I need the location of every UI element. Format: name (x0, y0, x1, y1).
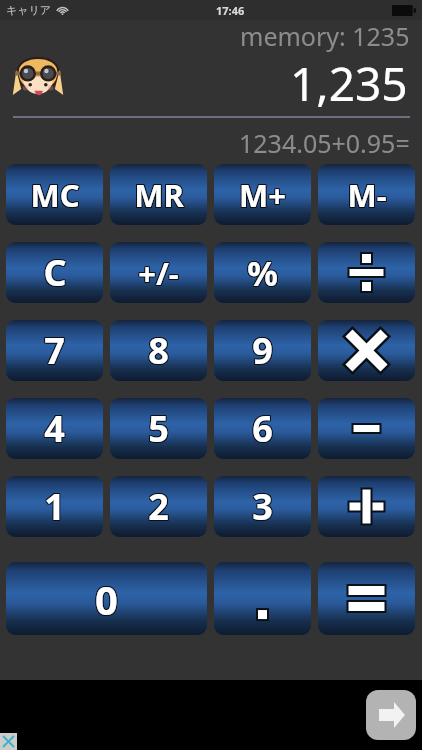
staticText: 1 (43, 483, 64, 532)
staticText: M+ (240, 174, 287, 216)
button[interactable]: 1 (6, 476, 103, 537)
staticText: 6 (253, 404, 274, 453)
staticText: M- (346, 173, 386, 215)
button[interactable]: Decimal point (214, 562, 311, 635)
staticText: MR (133, 173, 183, 215)
staticText: M- (348, 173, 388, 215)
staticText: 6 (252, 405, 273, 454)
staticText: +/- (139, 252, 180, 294)
staticText: 4 (44, 405, 65, 454)
staticText: 9 (253, 326, 274, 375)
button[interactable]: 8 (110, 320, 207, 381)
staticText: M+ (238, 173, 285, 215)
staticText: C (44, 247, 68, 296)
staticText: % (247, 249, 278, 295)
staticText: 0 (95, 571, 118, 625)
button[interactable]: Open ad (366, 690, 416, 740)
button[interactable]: Close ad (0, 733, 17, 750)
staticText: % (248, 250, 279, 296)
staticText: 1 (44, 483, 65, 532)
staticText: C (43, 249, 67, 298)
staticText: 5 (149, 405, 170, 454)
staticText: 4 (43, 403, 64, 452)
staticText: 9 (252, 327, 273, 376)
staticText: 9 (253, 325, 274, 374)
staticText: MR (135, 174, 185, 216)
staticText: 3 (252, 483, 273, 532)
staticText: MR (134, 173, 184, 215)
staticText: % (246, 251, 277, 297)
staticText: % (248, 251, 279, 297)
button[interactable]: Plus (318, 476, 415, 537)
button[interactable]: % (214, 242, 311, 303)
staticText: 8 (147, 327, 168, 376)
staticText: 5 (147, 403, 168, 452)
staticText: 2 (147, 482, 168, 531)
staticText: 0 (94, 571, 117, 625)
staticText: 5 (147, 405, 168, 454)
staticText: M- (348, 175, 388, 217)
staticText: +/- (137, 253, 178, 295)
staticText: 5 (149, 404, 170, 453)
staticText: 9 (251, 326, 272, 375)
staticText: M- (348, 174, 388, 216)
staticText: MR (134, 175, 184, 217)
staticText: MC (30, 175, 80, 217)
staticText: MC (30, 173, 80, 215)
staticText: M+ (238, 174, 285, 216)
staticText: MC (31, 175, 81, 217)
button[interactable]: 0 (6, 562, 207, 635)
staticText: 3 (253, 482, 274, 531)
button[interactable]: C (6, 242, 103, 303)
button[interactable]: MR (110, 164, 207, 225)
staticText: % (246, 250, 277, 296)
button[interactable]: +/- (110, 242, 207, 303)
button[interactable]: 9 (214, 320, 311, 381)
staticText: 8 (149, 327, 170, 376)
staticText: 8 (147, 325, 168, 374)
button[interactable]: Minus (318, 398, 415, 459)
staticText: 4 (45, 404, 66, 453)
staticText: C (44, 248, 68, 297)
button[interactable]: M- (318, 164, 415, 225)
button[interactable]: Equals (318, 562, 415, 635)
staticText: 6 (252, 403, 273, 452)
staticText: 6 (253, 405, 274, 454)
staticText: 3 (251, 482, 272, 531)
staticText: M+ (239, 175, 286, 217)
staticText: 1 (44, 481, 65, 530)
button[interactable]: M+ (214, 164, 311, 225)
staticText: 2 (148, 482, 169, 531)
staticText: 2 (149, 481, 170, 530)
staticText: MC (29, 174, 79, 216)
button[interactable]: MC (6, 164, 103, 225)
button[interactable]: 4 (6, 398, 103, 459)
staticText: MR (133, 174, 183, 216)
staticText: memory: 1235 (240, 19, 410, 53)
staticText: 7 (45, 326, 66, 375)
staticText: MC (31, 174, 81, 216)
button[interactable]: Advertisement (0, 680, 422, 750)
staticText: MC (29, 175, 79, 217)
button[interactable]: 7 (6, 320, 103, 381)
staticText: 0 (94, 573, 117, 627)
staticText: 7 (43, 325, 64, 374)
staticText: 3 (252, 482, 273, 531)
button[interactable]: 2 (110, 476, 207, 537)
staticText: 9 (253, 327, 274, 376)
staticText: 7 (45, 325, 66, 374)
button[interactable]: 3 (214, 476, 311, 537)
staticText: 7 (43, 326, 64, 375)
button[interactable]: 5 (110, 398, 207, 459)
button[interactable]: Divide (318, 242, 415, 303)
staticText: 3 (253, 483, 274, 532)
staticText: 2 (148, 483, 169, 532)
staticText: C (43, 248, 67, 297)
staticText: 2 (147, 481, 168, 530)
button[interactable]: 6 (214, 398, 311, 459)
button[interactable]: Multiply (318, 320, 415, 381)
staticText: 4 (44, 404, 65, 453)
staticText: 1 (44, 482, 65, 531)
staticText: MR (135, 175, 185, 217)
staticText: 1 (43, 481, 64, 530)
